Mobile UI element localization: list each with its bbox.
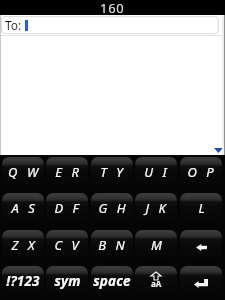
staticText: Z X: [11, 236, 36, 254]
staticText: M: [151, 236, 162, 254]
button[interactable]: E R: [46, 157, 88, 191]
button[interactable]: C V: [46, 230, 88, 264]
button[interactable]: !?123: [2, 266, 44, 300]
button[interactable]: O P: [180, 157, 222, 191]
button[interactable]: L: [180, 193, 222, 227]
staticText: J K: [145, 199, 167, 217]
button[interactable]: Enter: [180, 266, 222, 300]
button[interactable]: [0, 36, 225, 155]
button[interactable]: J K: [135, 193, 177, 227]
button[interactable]: To:: [1, 16, 219, 34]
staticText: L: [198, 199, 205, 217]
button[interactable]: M: [135, 230, 177, 264]
button[interactable]: B N: [91, 230, 133, 264]
staticText: C V: [54, 236, 80, 254]
button[interactable]: Backspace: [180, 230, 222, 264]
button[interactable]: sym: [46, 266, 88, 300]
staticText: B N: [98, 236, 126, 254]
button[interactable]: A S: [2, 193, 44, 227]
button[interactable]: D F: [46, 193, 88, 227]
staticText: Q W: [8, 163, 39, 181]
staticText: E R: [55, 163, 80, 181]
staticText: O P: [187, 163, 215, 181]
staticText: !?123: [6, 272, 40, 290]
staticText: space: [93, 272, 131, 290]
button[interactable]: U I: [135, 157, 177, 191]
staticText: A S: [11, 199, 36, 217]
staticText: D F: [54, 199, 80, 217]
button[interactable]: G H: [91, 193, 133, 227]
button[interactable]: Shift: [135, 266, 177, 300]
button[interactable]: Q W: [2, 157, 44, 191]
staticText: 160: [100, 0, 125, 14]
staticText: To:: [5, 17, 22, 33]
button[interactable]: space: [91, 266, 133, 300]
staticText: G H: [98, 199, 127, 217]
staticText: T Y: [100, 163, 124, 181]
staticText: sym: [54, 272, 81, 290]
button[interactable]: Z X: [2, 230, 44, 264]
staticText: aA: [151, 278, 162, 289]
staticText: U I: [144, 163, 168, 181]
button[interactable]: T Y: [91, 157, 133, 191]
